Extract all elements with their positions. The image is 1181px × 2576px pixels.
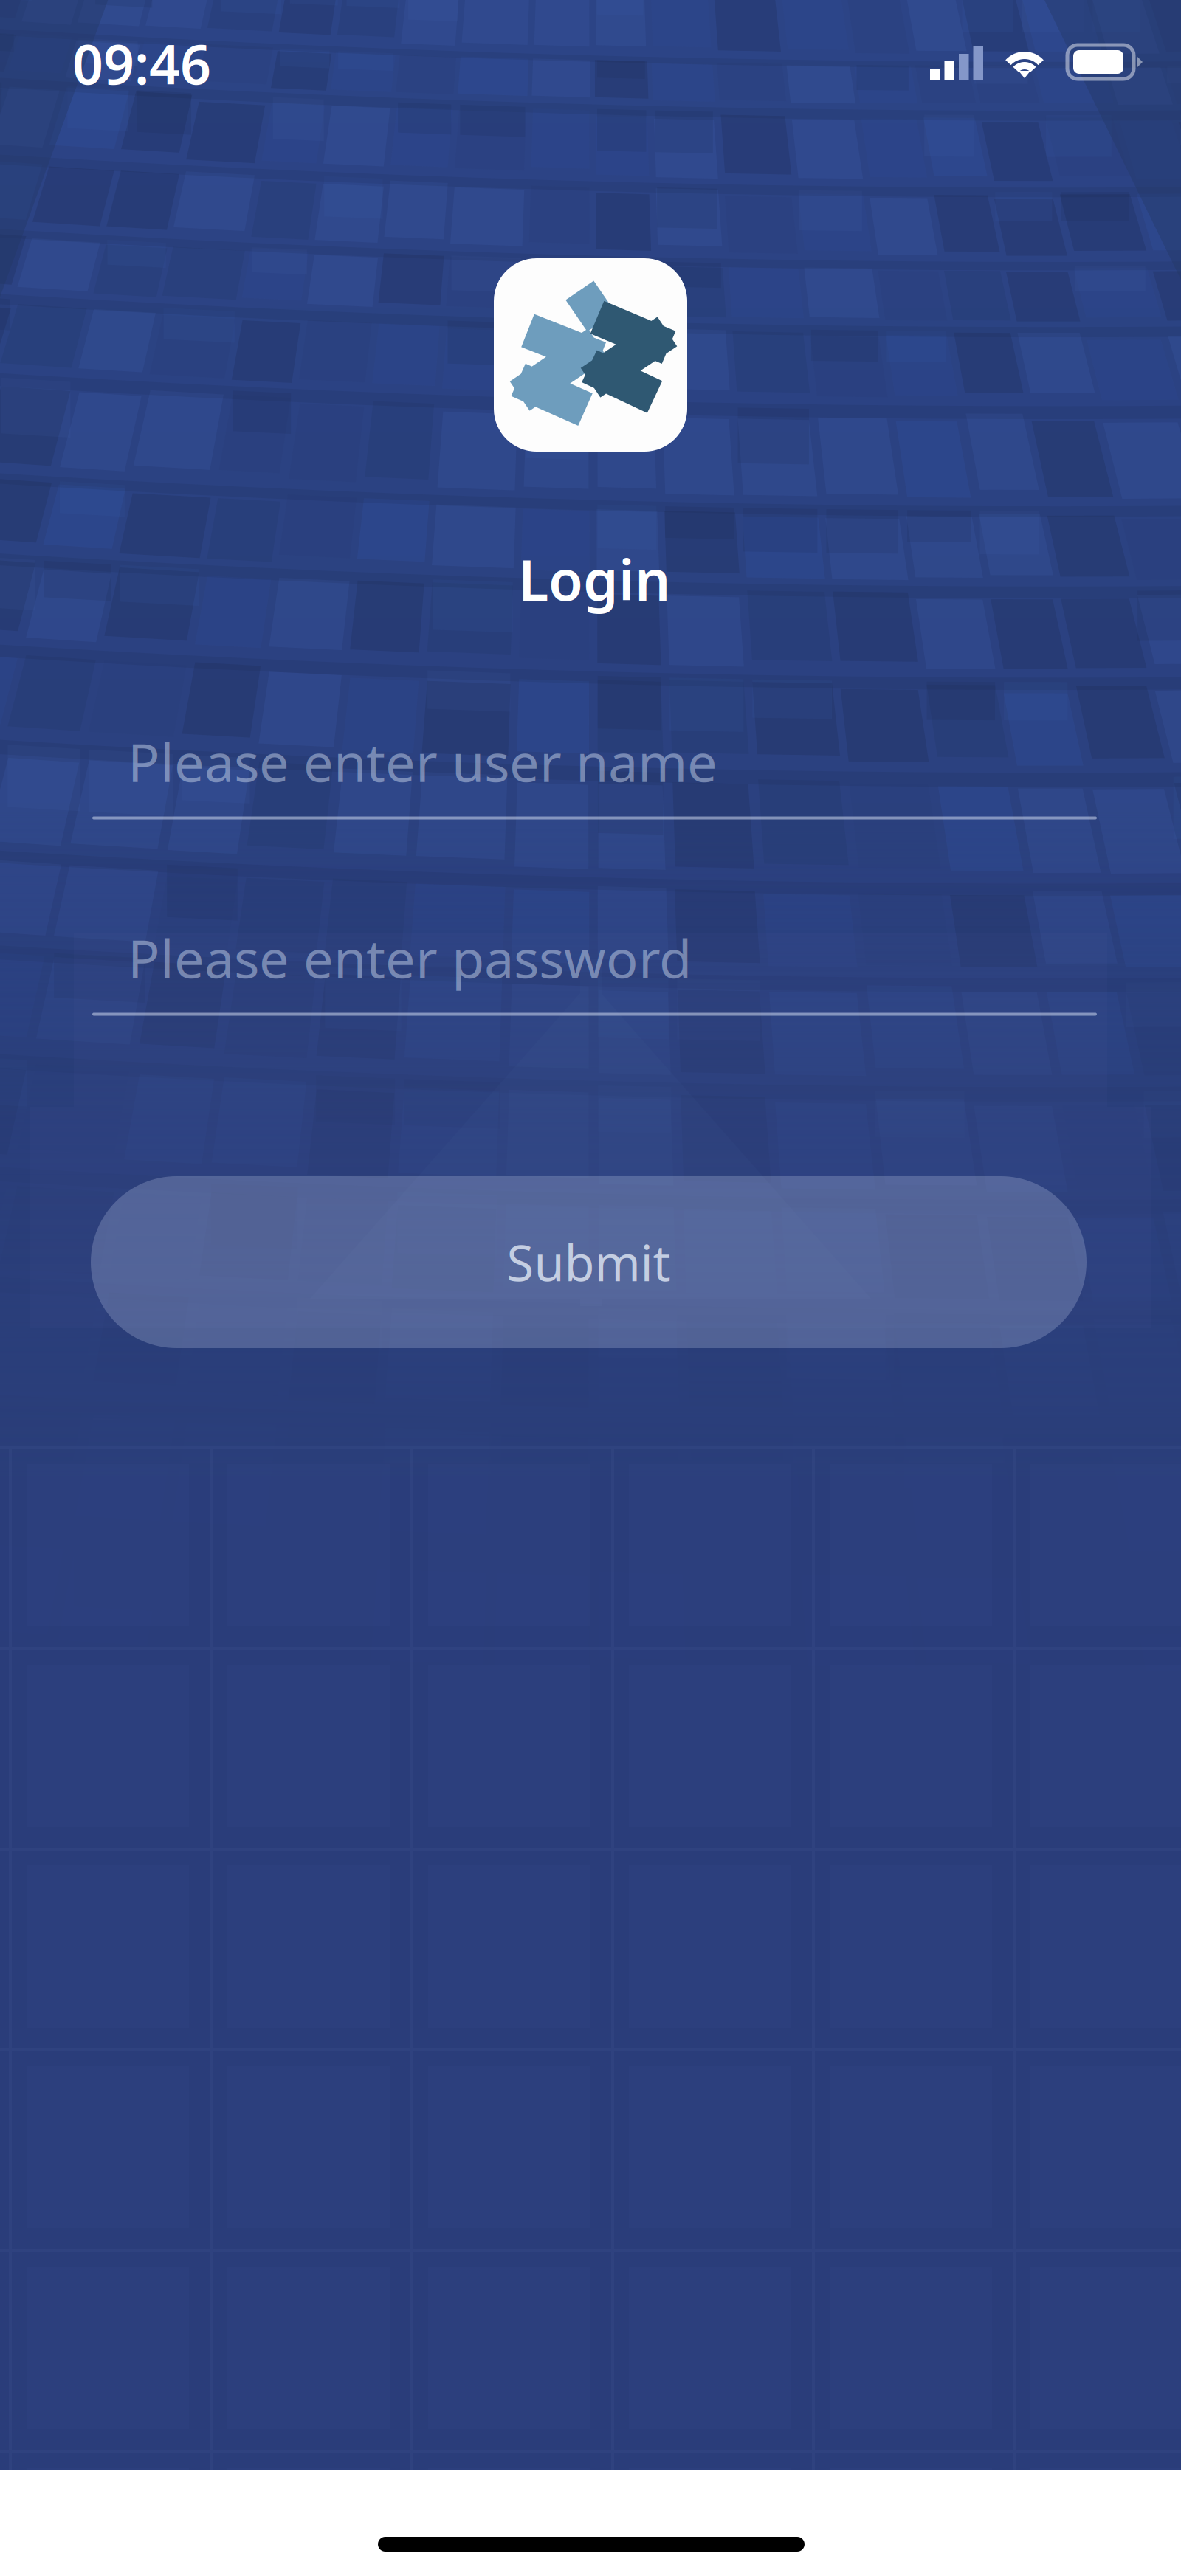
button[interactable]: Login <box>518 542 670 616</box>
staticText: Submit <box>507 1229 671 1295</box>
staticText: Please enter user name <box>128 726 717 797</box>
staticText: Login <box>518 542 670 616</box>
button[interactable]: Please enter password <box>92 922 1097 1017</box>
staticText: Please enter password <box>128 922 692 993</box>
staticText: 09:46 <box>72 27 211 99</box>
button[interactable]: Submit <box>91 1176 1087 1348</box>
button[interactable]: Please enter user name <box>92 726 1097 821</box>
